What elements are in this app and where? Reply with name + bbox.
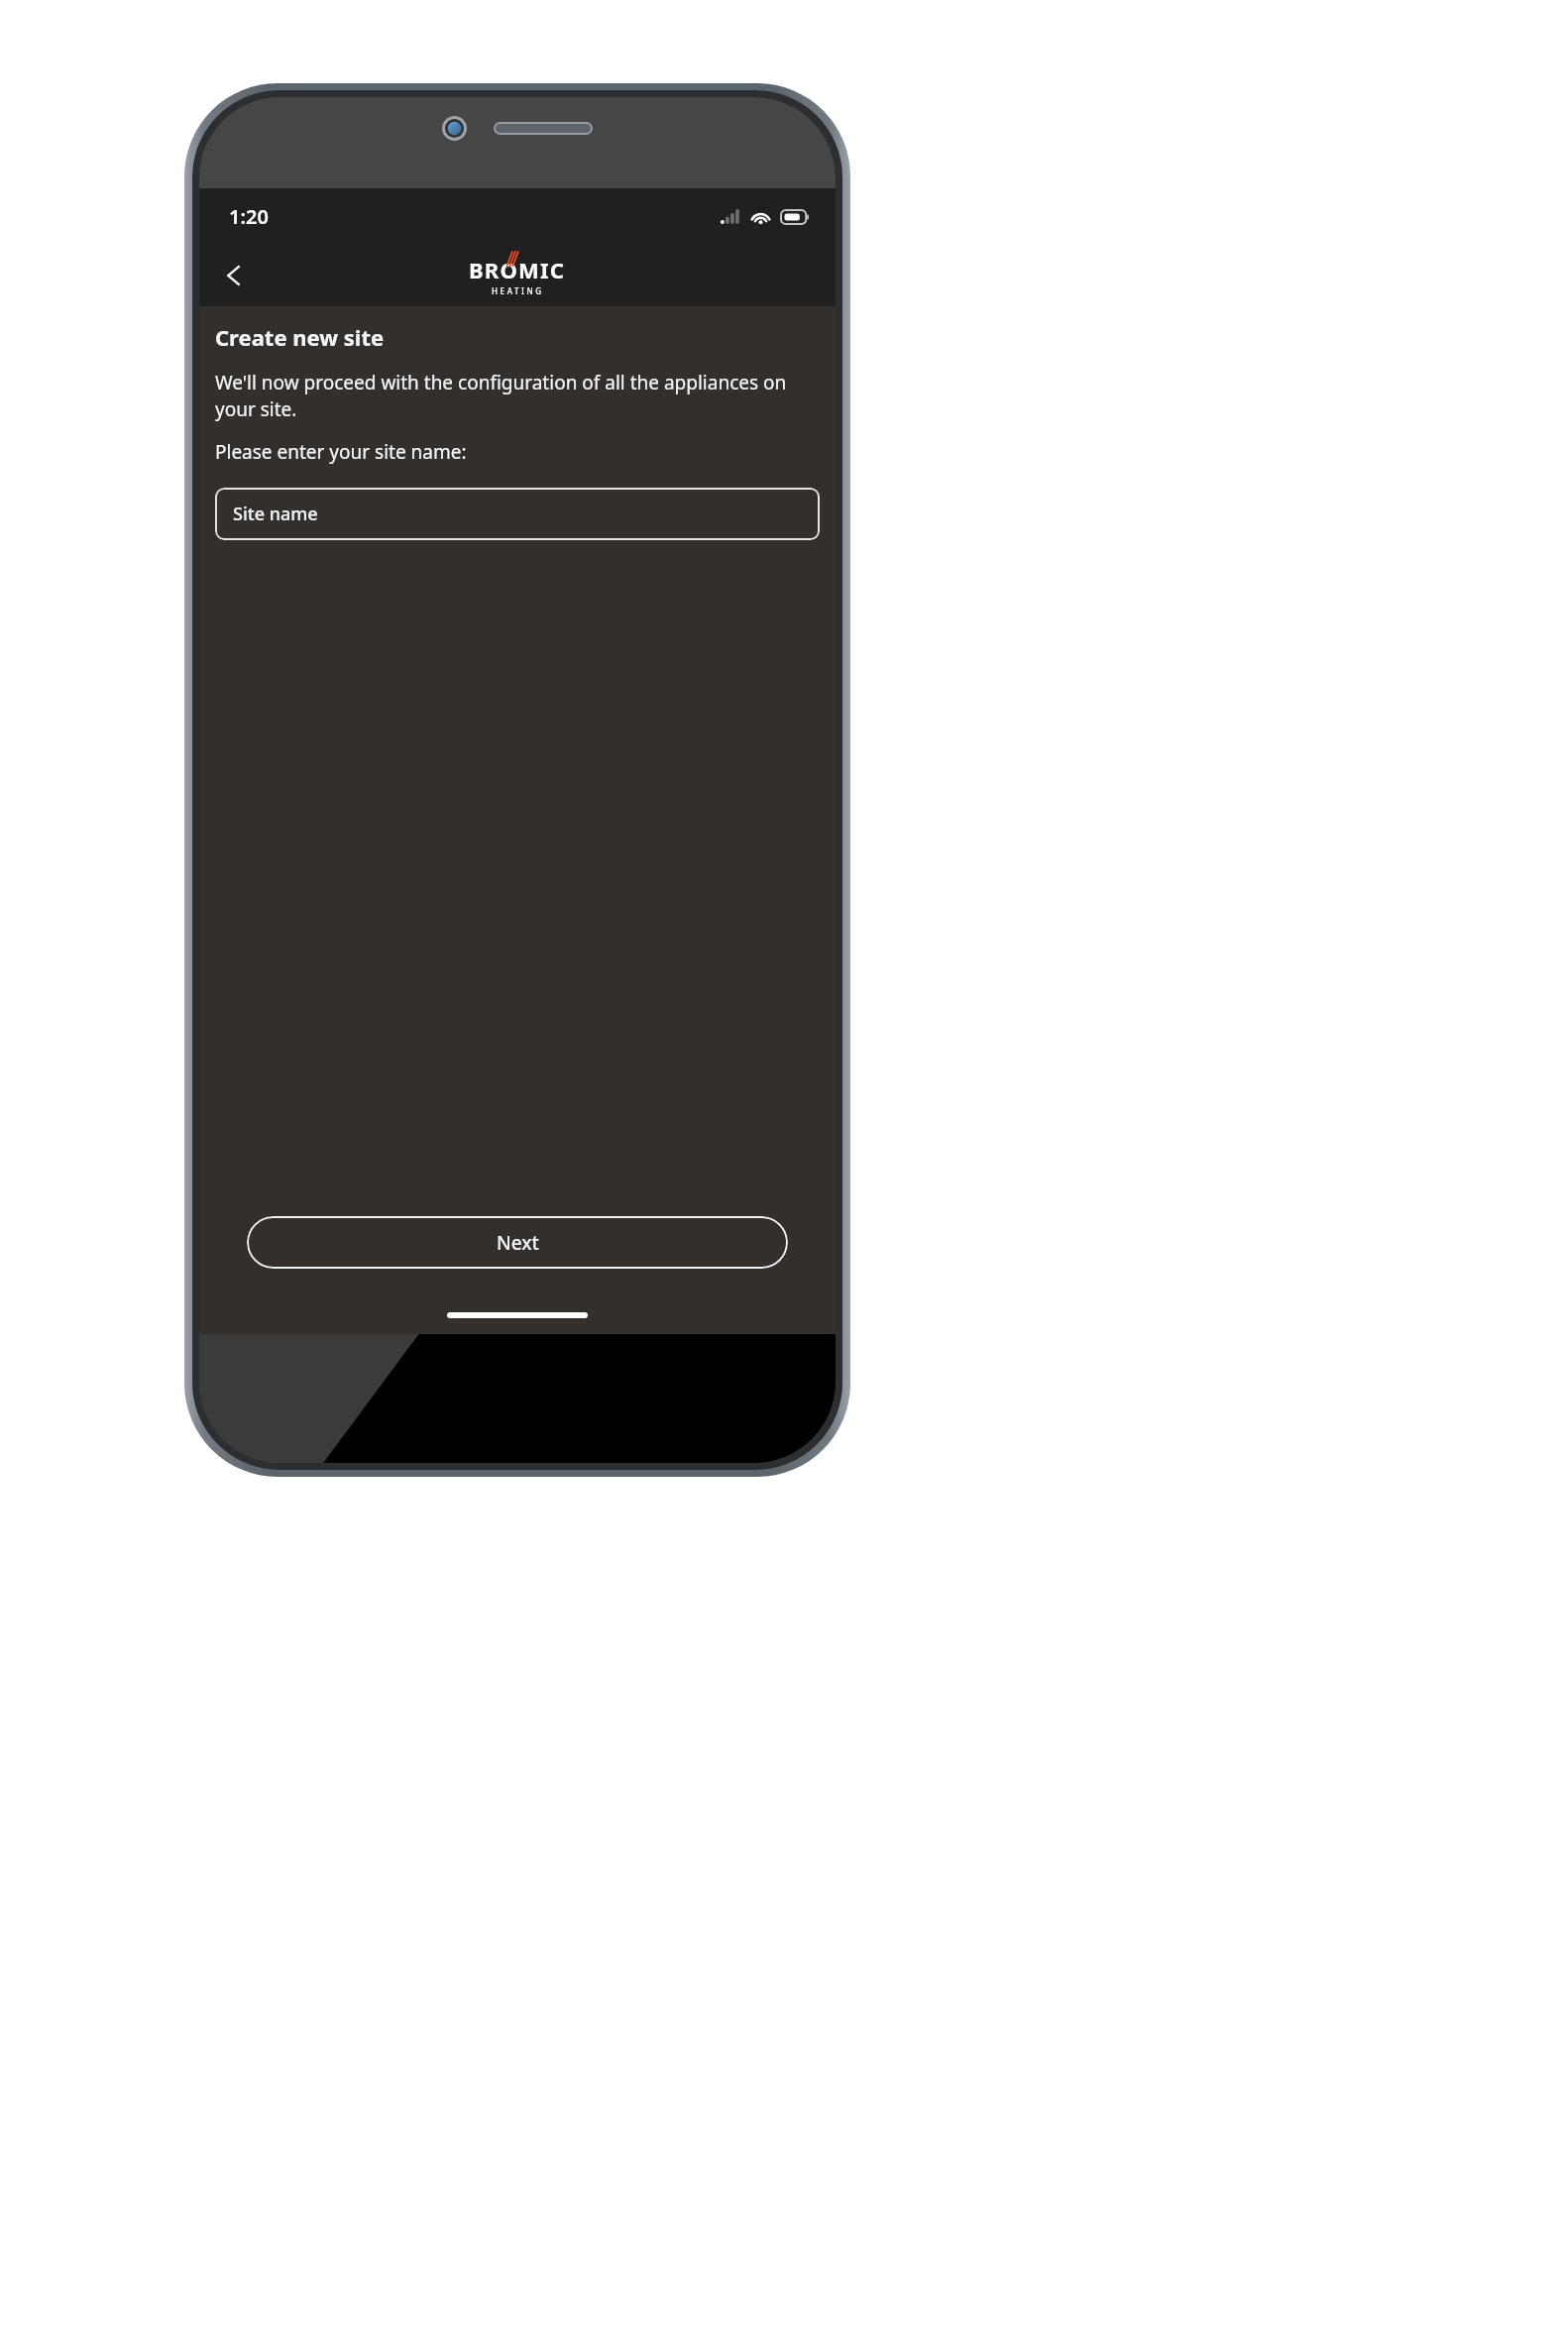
staticText: We'll now proceed with the configuration…: [215, 370, 820, 422]
button[interactable]: Next: [247, 1216, 788, 1269]
staticText: Please enter your site name:: [215, 439, 467, 465]
staticText: Next: [497, 1230, 539, 1256]
staticText: BROMIC: [469, 255, 566, 284]
staticText: Site name: [233, 502, 318, 526]
button[interactable]: Site name: [215, 488, 820, 540]
button[interactable]: Back: [211, 253, 257, 298]
staticText: HEATING: [492, 285, 544, 296]
staticText: Create new site: [215, 322, 385, 352]
staticText: 1:20: [229, 203, 269, 230]
